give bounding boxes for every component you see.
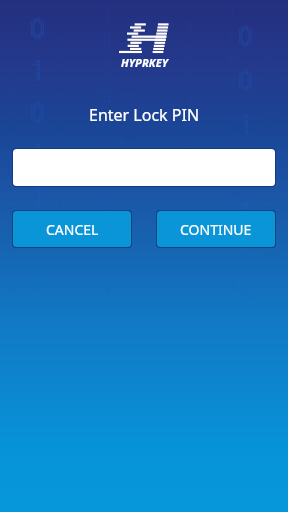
staticText: CANCEL xyxy=(46,220,99,239)
staticText: HYPRKEY xyxy=(121,55,169,70)
button[interactable] xyxy=(13,149,275,186)
button[interactable]: CANCEL xyxy=(13,211,131,247)
staticText: CONTINUE xyxy=(180,220,252,239)
button[interactable]: CONTINUE xyxy=(157,211,275,247)
staticText: Enter Lock PIN xyxy=(89,104,200,126)
